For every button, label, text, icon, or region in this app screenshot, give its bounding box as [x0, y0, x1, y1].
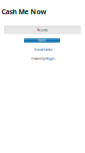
staticText: Blogger	[45, 56, 55, 60]
staticText: No posts.	[37, 28, 48, 32]
staticText: Cash Me Now	[1, 7, 46, 16]
button[interactable]: Blogger	[45, 56, 55, 60]
button[interactable]: Home	[24, 38, 60, 43]
staticText: .	[55, 56, 56, 60]
button[interactable]: View web version	[31, 47, 55, 51]
staticText: Powered by	[31, 56, 45, 60]
staticText: Home	[38, 38, 46, 42]
staticText: View web version	[34, 47, 53, 51]
